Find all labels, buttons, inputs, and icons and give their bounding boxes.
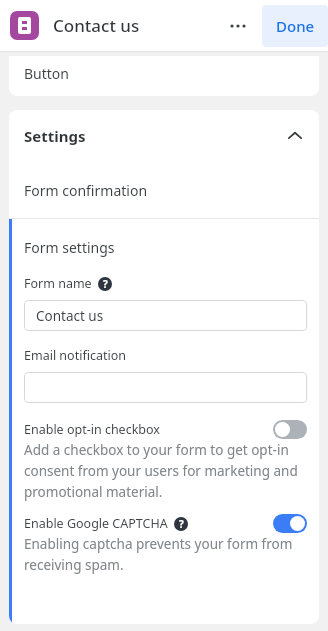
button[interactable]: Button	[9, 56, 319, 96]
button[interactable]: Contact us	[24, 300, 307, 331]
staticText: Email notification	[24, 347, 126, 364]
staticText: Form name	[24, 275, 92, 292]
button[interactable]: Enable opt-in checkbox	[24, 420, 307, 439]
button[interactable]: App icon	[10, 11, 39, 40]
other: Collapse	[286, 127, 304, 145]
staticText: Enable Google CAPTCHA	[24, 515, 168, 532]
button[interactable]: Toggle off	[273, 420, 307, 439]
button[interactable]: Form confirmation	[9, 162, 319, 218]
staticText: Settings	[24, 126, 86, 146]
staticText: Add a checkbox to your form to get opt-i…	[24, 441, 307, 501]
staticText: Form settings	[24, 238, 115, 257]
button[interactable]	[24, 372, 307, 403]
button[interactable]: Help	[98, 277, 112, 291]
staticText: Enabling captcha prevents your form from…	[24, 535, 307, 574]
staticText: Done	[276, 16, 315, 36]
staticText: Form confirmation	[24, 181, 148, 200]
button[interactable]: Enable Google CAPTCHA	[24, 514, 307, 533]
button[interactable]: Settings	[9, 110, 319, 162]
button[interactable]: Help	[174, 517, 188, 531]
staticText: Contact us	[53, 14, 140, 37]
button[interactable]: Toggle on	[273, 514, 307, 533]
button[interactable]: More options	[218, 6, 258, 46]
staticText: ?	[103, 277, 108, 291]
button[interactable]: Done	[262, 5, 328, 47]
staticText: Contact us	[36, 307, 104, 325]
staticText: ?	[179, 517, 184, 531]
staticText: Enable opt-in checkbox	[24, 421, 160, 438]
staticText: Button	[24, 64, 69, 83]
